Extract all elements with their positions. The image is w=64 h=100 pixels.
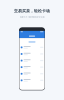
button[interactable] — [19, 77, 45, 84]
staticText: 交易买卖，轻松卡场 — [14, 9, 50, 13]
button[interactable] — [19, 57, 45, 64]
staticText: 海量卡片 随时随地安全交易 — [19, 16, 44, 18]
button[interactable] — [19, 64, 45, 70]
button[interactable] — [19, 44, 45, 51]
button[interactable] — [19, 70, 45, 77]
button[interactable] — [19, 51, 45, 57]
